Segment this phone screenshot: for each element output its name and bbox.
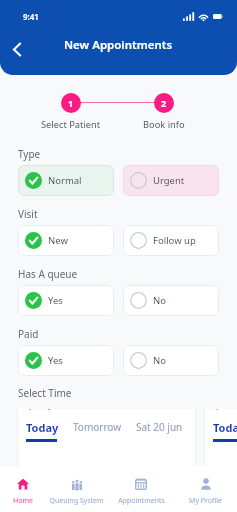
staticText: Has A queue: [18, 267, 78, 281]
staticText: New: [48, 234, 68, 247]
staticText: Type: [18, 147, 41, 161]
staticText: Select Patient: [41, 118, 101, 131]
button[interactable]: Today: [213, 420, 237, 442]
button[interactable]: 1: [41, 93, 101, 131]
staticText: 1: [68, 97, 74, 109]
button[interactable]: Yes: [18, 345, 114, 376]
staticText: Home: [13, 496, 33, 506]
button[interactable]: Follow up: [123, 225, 219, 256]
button[interactable]: 2: [143, 93, 185, 131]
button[interactable]: Sat 20 jun: [136, 420, 183, 434]
staticText: 2: [161, 97, 167, 109]
button[interactable]: My Profile: [174, 466, 237, 512]
staticText: Queuing System: [49, 496, 104, 506]
staticText: Zayed: [39, 409, 62, 410]
button[interactable]: New: [18, 225, 114, 256]
button[interactable]: Urgent: [123, 165, 219, 196]
staticText: New Appointments: [64, 37, 173, 53]
button[interactable]: Tomorrow: [73, 420, 122, 434]
button[interactable]: Home: [0, 466, 45, 512]
button[interactable]: No: [123, 345, 219, 376]
staticText: Select Time: [18, 386, 72, 400]
staticText: My Profile: [189, 496, 222, 506]
staticText: Today: [213, 420, 237, 435]
button[interactable]: Back: [4, 37, 29, 62]
staticText: Appointments: [118, 496, 165, 506]
button[interactable]: Today: [26, 420, 59, 442]
staticText: 9:41: [23, 11, 39, 22]
staticText: Urgent: [153, 174, 185, 187]
button[interactable]: Appointments: [108, 466, 174, 512]
button[interactable]: Queuing System: [45, 466, 108, 512]
staticText: No: [153, 294, 166, 307]
button[interactable]: Yes: [18, 285, 114, 316]
staticText: Visit: [18, 207, 38, 221]
button[interactable]: Normal: [18, 165, 114, 196]
staticText: Follow up: [153, 234, 196, 247]
staticText: Paid: [18, 327, 39, 341]
staticText: Book info: [143, 118, 185, 131]
staticText: No: [153, 354, 166, 367]
button[interactable]: No: [123, 285, 219, 316]
staticText: Today: [26, 420, 59, 435]
staticText: Normal: [48, 174, 82, 187]
staticText: Yes: [48, 294, 63, 307]
staticText: Yes: [48, 354, 63, 367]
